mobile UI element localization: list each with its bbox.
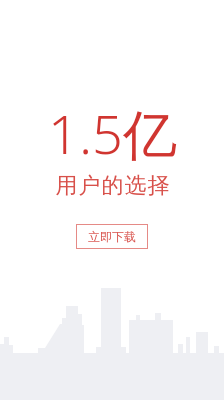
staticText: 1.5亿 xyxy=(48,96,177,170)
staticText: 立即下载 xyxy=(88,229,136,244)
button[interactable]: 立即下载 xyxy=(76,224,148,249)
staticText: 用户的选择 xyxy=(55,172,170,200)
